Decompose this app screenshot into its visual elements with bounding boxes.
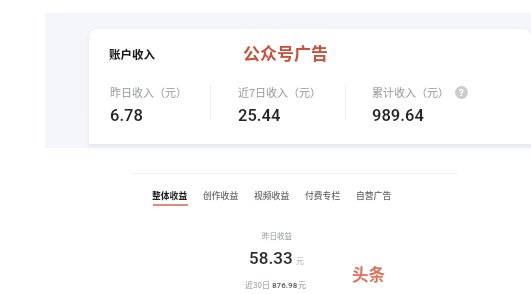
staticText: 累计收入（元）	[372, 84, 449, 100]
staticText: 58.33	[249, 248, 293, 268]
staticText: 元	[298, 279, 306, 291]
staticText: 876.98	[272, 281, 298, 290]
staticText: 昨日收益	[262, 230, 292, 241]
button[interactable]: 自营广告	[356, 189, 392, 204]
staticText: 头条	[352, 262, 385, 286]
staticText: 创作收益	[203, 189, 239, 202]
button[interactable]: 视频收益	[254, 189, 290, 204]
staticText: 视频收益	[254, 189, 290, 202]
staticText: 自营广告	[356, 189, 392, 202]
staticText: 近30日	[245, 279, 272, 291]
staticText: 近7日收入（元）	[238, 84, 322, 100]
staticText: 元	[296, 255, 304, 267]
staticText: 昨日收入（元）	[110, 84, 187, 100]
button[interactable]: Help	[455, 86, 468, 99]
staticText: 付费专栏	[305, 189, 341, 202]
staticText: 6.78	[110, 106, 143, 125]
button[interactable]: 创作收益	[203, 189, 239, 204]
staticText: 账户收入	[109, 46, 155, 63]
staticText: 整体收益	[152, 189, 188, 202]
button[interactable]: 整体收益	[152, 189, 188, 206]
button[interactable]: 付费专栏	[305, 189, 341, 204]
staticText: 989.64	[372, 106, 424, 125]
staticText: 25.44	[238, 106, 281, 125]
staticText: 公众号广告	[243, 40, 328, 65]
staticText: ?	[459, 87, 464, 98]
